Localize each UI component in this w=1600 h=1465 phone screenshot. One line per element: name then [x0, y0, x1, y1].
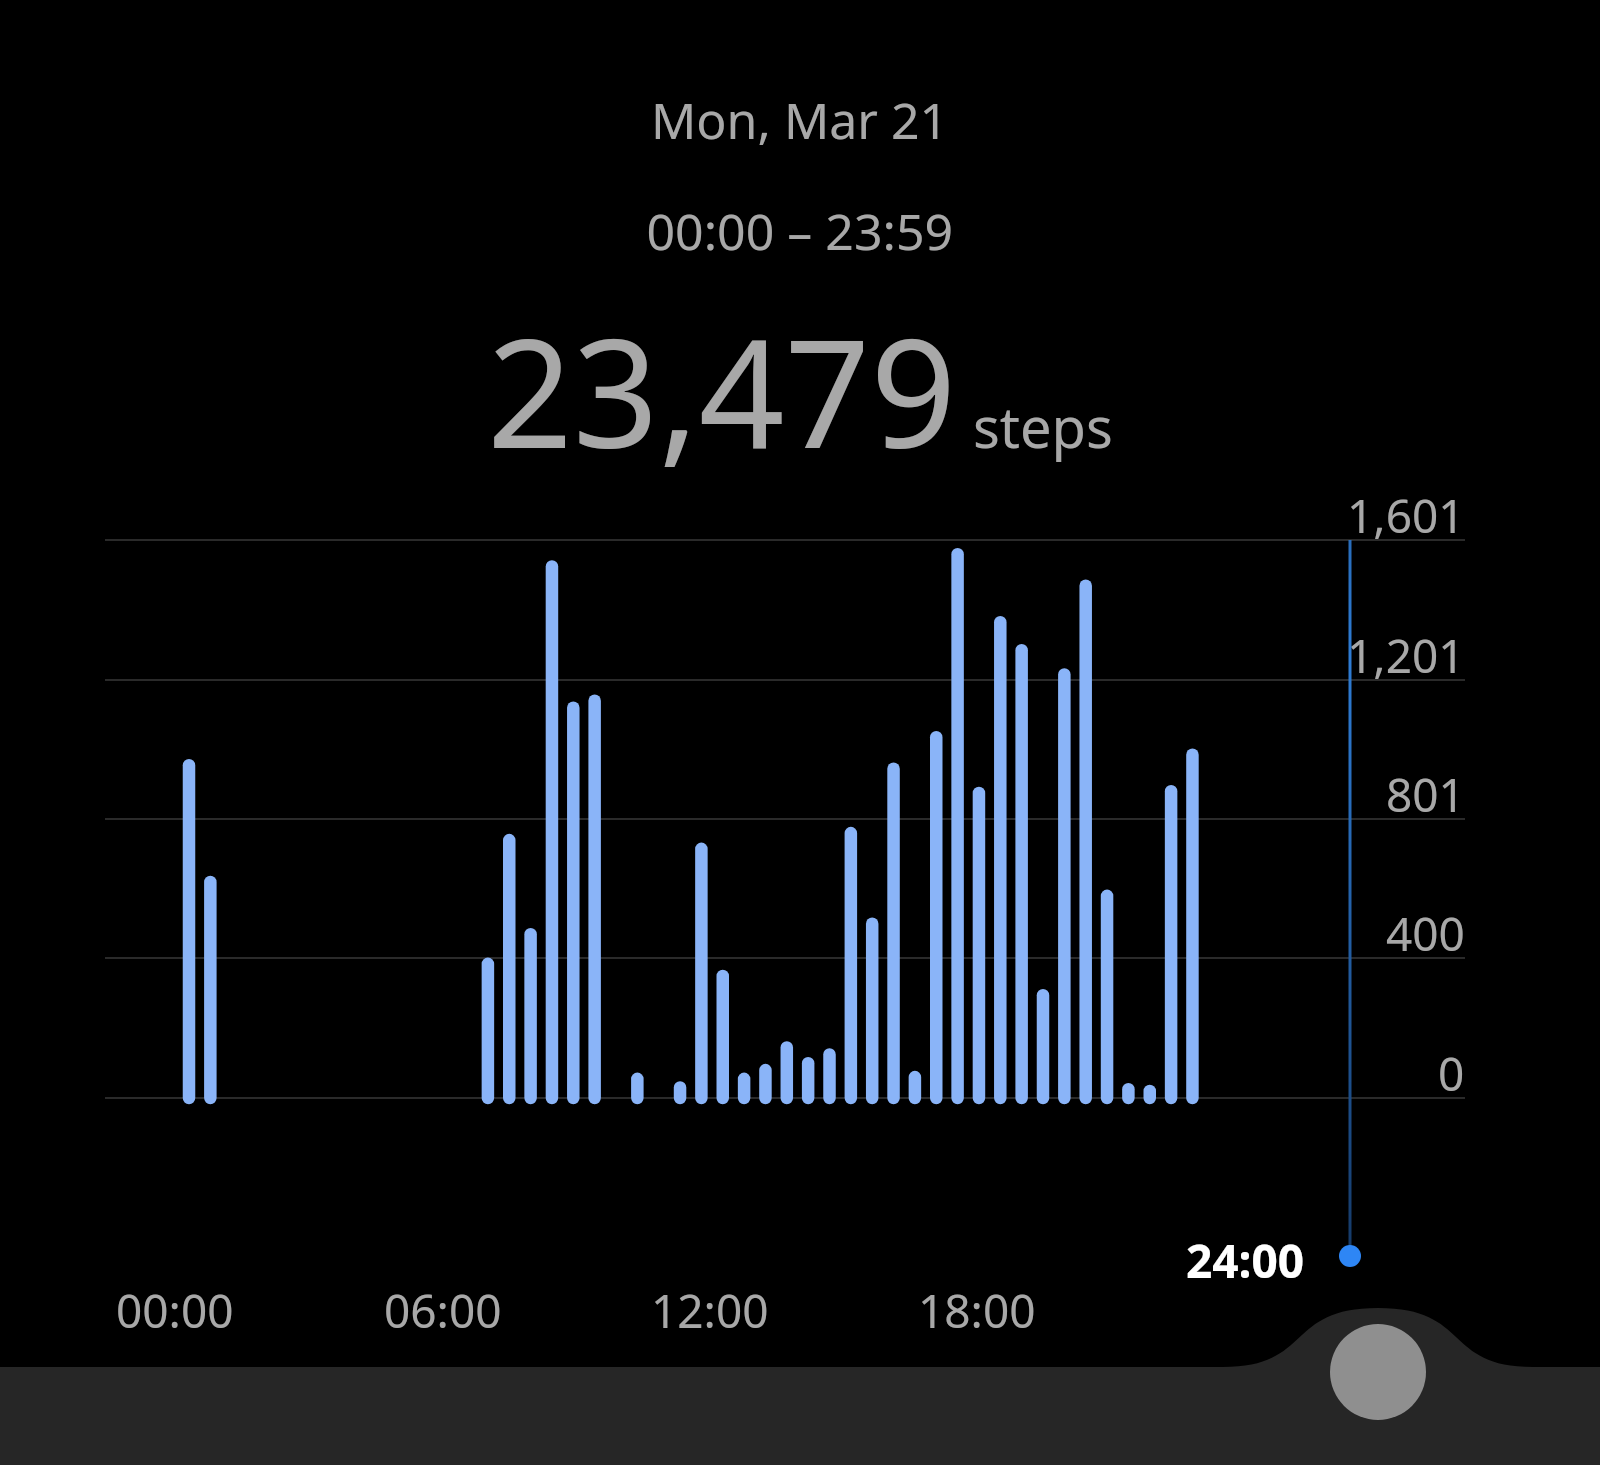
button[interactable]: Daily step chart, 23,479 steps	[0, 0, 1600, 1465]
